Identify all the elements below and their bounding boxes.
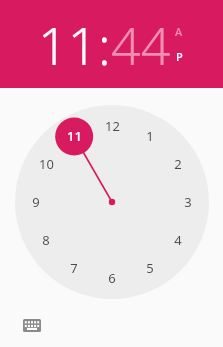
button[interactable]: 6 [98,267,126,289]
staticText: 12 [105,117,120,135]
staticText: : [98,9,111,80]
button[interactable]: 2 [164,153,192,175]
staticText: P [176,49,183,64]
button[interactable]: 8 [32,229,60,251]
button[interactable]: 11 [60,125,88,147]
staticText: 1 [146,127,154,145]
button[interactable]: Switch to text input [18,311,46,339]
staticText: 11 [67,127,82,145]
staticText: 4 [174,231,182,249]
button[interactable]: 12 [98,115,126,137]
staticText: 9 [32,193,40,211]
staticText: 3 [184,193,192,211]
button[interactable]: 1 [136,125,164,147]
staticText: 2 [174,155,182,173]
button[interactable]: P [176,49,183,64]
button[interactable]: 3 [174,191,202,213]
button[interactable]: A [175,24,183,39]
button[interactable]: 11 [38,9,98,80]
button[interactable]: 10 [32,153,60,175]
staticText: 6 [108,269,116,287]
staticText: 10 [39,155,54,173]
button[interactable] [15,105,209,299]
button[interactable]: 7 [60,257,88,279]
staticText: A [175,24,183,39]
staticText: 8 [42,231,50,249]
button[interactable]: 9 [22,191,50,213]
button[interactable]: 5 [136,257,164,279]
staticText: 7 [70,259,78,277]
button[interactable]: 44 [111,9,171,80]
button[interactable]: 4 [164,229,192,251]
staticText: 5 [146,259,154,277]
